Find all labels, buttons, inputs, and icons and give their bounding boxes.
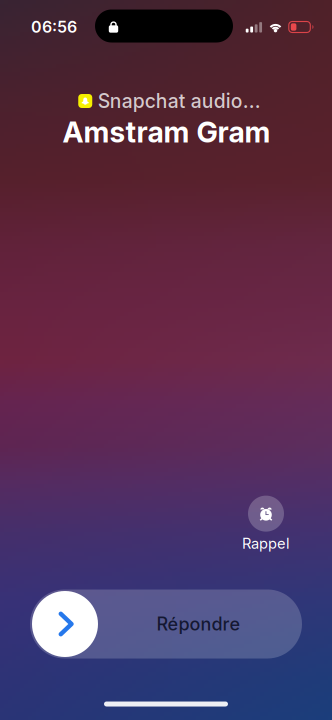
staticText: Amstram Gram xyxy=(62,115,270,149)
button[interactable]: Répondre xyxy=(30,589,302,658)
staticText: Rappel xyxy=(242,535,290,552)
staticText: 06:56 xyxy=(31,17,77,37)
staticText: Snapchat audio... xyxy=(98,89,261,113)
staticText: Répondre xyxy=(156,613,240,635)
button[interactable]: Rappel xyxy=(226,495,306,553)
